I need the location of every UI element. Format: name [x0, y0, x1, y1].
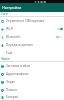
- staticText: Передача данных: [6, 43, 33, 47]
- staticText: Батарея: [6, 95, 19, 99]
- staticText: Аудиопрофили: [6, 72, 29, 76]
- staticText: Настройки: [2, 5, 22, 10]
- button[interactable]: Ещё...: [0, 49, 64, 57]
- button[interactable]: Wi-Fi: [0, 25, 64, 33]
- button[interactable]: Экран: [0, 78, 64, 86]
- staticText: Bluetooth: [6, 35, 21, 39]
- staticText: Управление SIM-картами: [6, 19, 45, 23]
- button[interactable]: Заставка и обои: [0, 62, 64, 70]
- staticText: Wi-Fi: [6, 27, 14, 31]
- staticText: Экран: [1, 57, 10, 61]
- button[interactable]: Батарея: [0, 94, 64, 100]
- staticText: Экран: [6, 80, 16, 84]
- button[interactable]: Bluetooth: [0, 33, 64, 41]
- button[interactable]: Аудиопрофили: [0, 70, 64, 78]
- button[interactable]: Управление SIM-картами: [0, 17, 64, 25]
- other: Switch off: [56, 35, 63, 39]
- staticText: Память: [6, 88, 18, 92]
- staticText: Ещё...: [6, 51, 15, 55]
- staticText: Заставка и обои: [6, 64, 31, 68]
- staticText: Сети: [1, 12, 8, 16]
- button[interactable]: Настройки: [0, 3, 64, 12]
- button[interactable]: Память: [0, 86, 64, 94]
- button[interactable]: Передача данных: [0, 41, 64, 49]
- other: Switch on: [56, 27, 63, 31]
